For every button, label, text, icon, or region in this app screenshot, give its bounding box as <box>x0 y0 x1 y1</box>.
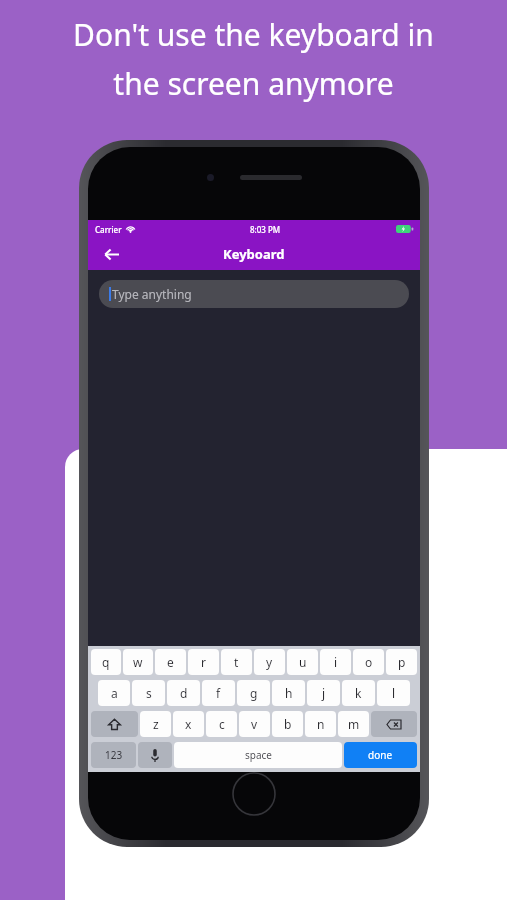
staticText: j <box>322 685 326 701</box>
button[interactable]: s <box>132 680 165 706</box>
button[interactable]: c <box>206 711 237 737</box>
button[interactable]: Shift <box>91 711 138 737</box>
button[interactable]: n <box>305 711 336 737</box>
button[interactable]: o <box>353 649 384 675</box>
staticText: space <box>245 748 272 762</box>
button[interactable]: e <box>155 649 186 675</box>
staticText: s <box>146 685 152 701</box>
staticText: Carrier <box>95 224 122 235</box>
staticText: a <box>111 685 118 701</box>
button[interactable]: y <box>254 649 285 675</box>
staticText: c <box>219 716 225 732</box>
staticText: 123 <box>105 748 123 762</box>
staticText: z <box>153 716 159 732</box>
button[interactable]: l <box>377 680 410 706</box>
button[interactable]: q <box>91 649 121 675</box>
staticText: g <box>250 685 258 701</box>
button[interactable]: Dictate <box>138 742 172 768</box>
button[interactable]: j <box>307 680 340 706</box>
button[interactable]: h <box>272 680 305 706</box>
staticText: h <box>285 685 293 701</box>
staticText: q <box>102 654 110 670</box>
button[interactable]: t <box>221 649 252 675</box>
staticText: 8:03 PM <box>250 224 281 235</box>
staticText: l <box>392 685 396 701</box>
button[interactable]: Home <box>232 772 276 816</box>
staticText: b <box>284 716 292 732</box>
staticText: u <box>299 654 307 670</box>
button[interactable]: k <box>342 680 375 706</box>
staticText: r <box>201 654 206 670</box>
button[interactable]: a <box>98 680 130 706</box>
staticText: p <box>398 654 406 670</box>
staticText: v <box>251 716 258 732</box>
staticText: d <box>180 685 188 701</box>
button[interactable]: Back <box>98 241 124 267</box>
button[interactable]: b <box>272 711 303 737</box>
button[interactable]: f <box>202 680 235 706</box>
button[interactable]: r <box>188 649 219 675</box>
staticText: m <box>348 716 360 732</box>
button[interactable]: g <box>237 680 270 706</box>
staticText: the screen anymore <box>113 63 394 104</box>
button[interactable]: Backspace <box>371 711 417 737</box>
button[interactable]: p <box>386 649 417 675</box>
staticText: t <box>234 654 239 670</box>
staticText: n <box>317 716 325 732</box>
button[interactable]: 123 <box>91 742 136 768</box>
button[interactable]: w <box>123 649 153 675</box>
staticText: f <box>216 685 221 701</box>
button[interactable]: i <box>320 649 351 675</box>
staticText: done <box>368 748 393 762</box>
button[interactable]: done <box>344 742 417 768</box>
button[interactable]: d <box>167 680 200 706</box>
button[interactable]: z <box>140 711 171 737</box>
button[interactable]: space <box>174 742 342 768</box>
button[interactable]: Type anything <box>99 280 409 308</box>
staticText: Keyboard <box>223 245 285 263</box>
button[interactable]: v <box>239 711 270 737</box>
staticText: e <box>167 654 174 670</box>
staticText: y <box>266 654 273 670</box>
button[interactable]: x <box>173 711 204 737</box>
staticText: Don't use the keyboard in <box>73 14 434 55</box>
staticText: o <box>365 654 373 670</box>
button[interactable]: m <box>338 711 369 737</box>
button[interactable]: u <box>287 649 318 675</box>
staticText: x <box>185 716 192 732</box>
staticText: k <box>355 685 362 701</box>
staticText: w <box>133 654 143 670</box>
staticText: i <box>334 654 338 670</box>
staticText: Type anything <box>112 286 192 302</box>
